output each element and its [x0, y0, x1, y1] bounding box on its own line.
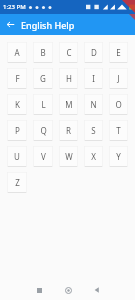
button[interactable]: M — [59, 94, 78, 115]
staticText: V — [41, 151, 46, 162]
staticText: X — [91, 151, 96, 162]
staticText: C — [66, 47, 72, 58]
staticText: B — [40, 47, 46, 58]
button[interactable]: Z — [7, 172, 27, 193]
button[interactable]: J — [109, 68, 128, 89]
staticText: M — [65, 99, 73, 110]
staticText: English Help — [21, 19, 75, 31]
button[interactable]: L — [33, 94, 53, 115]
staticText: 1:23 PM — [3, 3, 26, 11]
staticText: S — [91, 125, 96, 136]
staticText: A — [14, 47, 20, 58]
button[interactable]: T — [109, 120, 128, 141]
button[interactable]: Back — [86, 280, 108, 300]
button[interactable]: O — [109, 94, 128, 115]
staticText: L — [41, 99, 46, 110]
staticText: H — [66, 73, 72, 84]
button[interactable]: I — [84, 68, 103, 89]
button[interactable]: A — [7, 42, 27, 63]
button[interactable]: V — [33, 146, 53, 167]
button[interactable]: X — [84, 146, 103, 167]
button[interactable]: D — [84, 42, 103, 63]
button[interactable]: Q — [33, 120, 53, 141]
staticText: N — [90, 99, 97, 110]
button[interactable]: K — [7, 94, 27, 115]
button[interactable]: P — [7, 120, 27, 141]
staticText: K — [15, 99, 20, 110]
button[interactable]: R — [59, 120, 78, 141]
staticText: P — [15, 125, 20, 136]
button[interactable]: N — [84, 94, 103, 115]
button[interactable]: Y — [109, 146, 128, 167]
staticText: W — [65, 151, 73, 162]
staticText: I — [92, 73, 95, 84]
button[interactable]: G — [33, 68, 53, 89]
button[interactable]: Recent apps — [28, 280, 50, 300]
button[interactable]: C — [59, 42, 78, 63]
button[interactable]: F — [7, 68, 27, 89]
staticText: Q — [40, 125, 47, 136]
staticText: U — [14, 151, 20, 162]
button[interactable]: S — [84, 120, 103, 141]
staticText: Z — [15, 177, 20, 188]
staticText: T — [116, 125, 121, 136]
button[interactable]: E — [109, 42, 128, 63]
staticText: F — [15, 73, 20, 84]
button[interactable]: H — [59, 68, 78, 89]
button[interactable]: U — [7, 146, 27, 167]
staticText: O — [115, 99, 122, 110]
staticText: G — [40, 73, 46, 84]
button[interactable]: Home — [57, 280, 79, 300]
button[interactable]: W — [59, 146, 78, 167]
staticText: R — [66, 125, 71, 136]
button[interactable]: B — [33, 42, 53, 63]
staticText: E — [116, 47, 121, 58]
button[interactable]: Back — [0, 14, 21, 35]
staticText: D — [91, 47, 97, 58]
staticText: J — [117, 73, 120, 84]
staticText: Y — [116, 151, 121, 162]
